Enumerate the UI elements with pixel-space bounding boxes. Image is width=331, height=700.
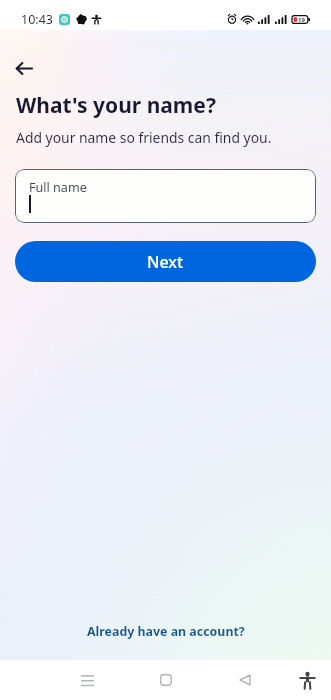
staticText: Full name	[29, 179, 87, 196]
staticText: Next	[147, 251, 184, 273]
staticText: 10:43	[21, 11, 53, 28]
button[interactable]: Accessibility	[295, 668, 319, 692]
button[interactable]: Recents	[48, 660, 126, 700]
button[interactable]: Back	[8, 52, 40, 84]
button[interactable]: Already have an account?	[0, 623, 331, 640]
staticText: 19	[298, 16, 305, 24]
staticText: Add your name so friends can find you.	[16, 128, 272, 147]
button[interactable]: Next	[15, 241, 316, 282]
staticText: What's your name?	[16, 91, 216, 120]
staticText: Already have an account?	[87, 623, 245, 640]
button[interactable]: Full name	[15, 169, 316, 223]
button[interactable]: Home	[126, 660, 205, 700]
button[interactable]: Back	[205, 660, 284, 700]
